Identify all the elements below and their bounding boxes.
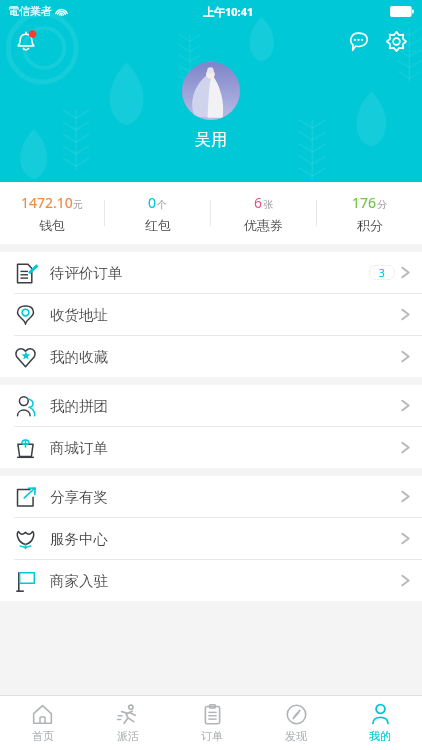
button[interactable]: 服务中心: [0, 518, 422, 559]
staticText: 钱包: [39, 217, 65, 233]
button[interactable]: 首页: [0, 696, 85, 750]
staticText: 1472.10: [21, 193, 73, 212]
staticText: 分: [377, 198, 387, 211]
staticText: 优惠券: [244, 217, 283, 233]
staticText: 我的: [369, 729, 391, 743]
button[interactable]: 我的拼团: [0, 385, 422, 426]
staticText: 首页: [32, 729, 54, 743]
staticText: 订单: [201, 729, 223, 743]
staticText: 0: [148, 193, 157, 212]
button[interactable]: Messages: [342, 25, 374, 57]
button[interactable]: 订单: [170, 696, 254, 750]
button[interactable]: 分享有奖: [0, 476, 422, 517]
button[interactable]: 1472.10: [0, 182, 104, 244]
button[interactable]: Profile photo: [182, 62, 240, 120]
staticText: 元: [73, 198, 83, 211]
button[interactable]: Settings: [380, 25, 412, 57]
button[interactable]: 176: [317, 182, 422, 244]
staticText: 发现: [285, 729, 307, 743]
staticText: 收货地址: [50, 306, 108, 324]
button[interactable]: 我的: [338, 696, 422, 750]
button[interactable]: Notifications: [10, 25, 42, 57]
staticText: 上午10:41: [203, 4, 254, 19]
staticText: 我的收藏: [50, 348, 108, 366]
staticText: 商家入驻: [50, 572, 108, 590]
staticText: 吴用: [195, 130, 227, 150]
staticText: 176: [352, 193, 377, 212]
staticText: 我的拼团: [50, 397, 108, 415]
button[interactable]: 收货地址: [0, 294, 422, 335]
button[interactable]: 商城订单: [0, 427, 422, 468]
staticText: 分享有奖: [50, 488, 108, 506]
staticText: 待评价订单: [50, 264, 123, 282]
button[interactable]: 我的收藏: [0, 336, 422, 377]
button[interactable]: 发现: [254, 696, 338, 750]
button[interactable]: 商家入驻: [0, 560, 422, 601]
staticText: 张: [263, 198, 273, 211]
button[interactable]: 0: [105, 182, 210, 244]
staticText: 红包: [145, 217, 171, 233]
button[interactable]: 6: [211, 182, 316, 244]
staticText: 6: [254, 193, 263, 212]
staticText: 个: [157, 198, 167, 211]
staticText: 3: [379, 266, 385, 280]
button[interactable]: 待评价订单: [0, 252, 422, 293]
staticText: 派活: [117, 729, 139, 743]
staticText: 服务中心: [50, 530, 108, 548]
button[interactable]: 派活: [85, 696, 170, 750]
staticText: 积分: [357, 217, 383, 233]
staticText: 商城订单: [50, 439, 108, 457]
staticText: 電信業者: [8, 4, 52, 18]
